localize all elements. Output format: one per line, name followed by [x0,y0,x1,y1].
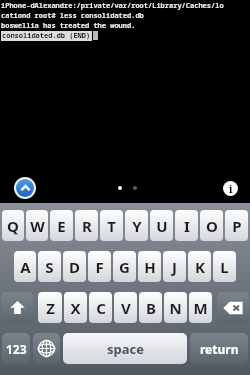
staticText: consolidated.db (END) [2,31,91,41]
staticText: B [146,298,156,318]
staticText: L [220,257,229,277]
button[interactable]: M [189,292,212,323]
staticText: P [232,216,242,236]
button[interactable]: P [225,210,248,241]
staticText: K [195,257,205,277]
button[interactable]: V [114,292,137,323]
staticText: space [107,340,144,358]
button[interactable]: Z [38,292,62,323]
button[interactable]: E [50,210,73,241]
staticText: cationd root# less consolidated.db [1,11,144,21]
staticText: F [95,257,104,277]
button[interactable]: N [164,292,187,323]
button[interactable]: Y [125,210,148,241]
staticText: T [107,216,116,236]
staticText: U [156,216,168,236]
button[interactable]: D [63,251,86,282]
button[interactable]: X [64,292,87,323]
button[interactable]: Shift [1,292,33,323]
staticText: Z [46,298,55,318]
button[interactable]: U [150,210,173,241]
button[interactable]: C [89,292,112,323]
staticText: A [20,257,31,277]
staticText: V [121,298,131,318]
staticText: E [57,216,66,236]
button[interactable]: F [88,251,111,282]
button[interactable]: Info [220,178,240,198]
button[interactable]: A [14,251,36,282]
button[interactable]: L [213,251,236,282]
staticText: X [70,298,81,318]
staticText: i [229,182,233,196]
button[interactable]: Delete [217,292,249,323]
staticText: H [144,257,156,277]
button[interactable]: K [188,251,211,282]
staticText: J [172,257,177,277]
staticText: R [82,216,92,236]
staticText: Q [7,216,19,236]
staticText: I [184,216,190,236]
staticText: S [45,257,54,277]
staticText: return [200,341,239,357]
button[interactable]: Change keyboard [33,333,60,364]
button[interactable]: return [190,333,248,364]
staticText: W [30,216,45,236]
staticText: N [169,298,182,318]
button[interactable]: Show menu [14,177,36,199]
staticText: D [69,257,80,277]
button[interactable]: J [163,251,186,282]
button[interactable]: Numbers [2,333,30,364]
staticText: boswellia has treated the wound. [1,21,136,31]
button[interactable]: G [113,251,136,282]
staticText: G [119,257,130,277]
button[interactable]: W [26,210,48,241]
button[interactable]: O [200,210,223,241]
staticText: 123 [6,341,27,357]
button[interactable]: T [100,210,123,241]
staticText: M [193,298,208,318]
button[interactable]: B [139,292,162,323]
staticText: iPhone-dAlexandre:/private/var/root/Libr… [1,1,224,11]
staticText: O [206,216,218,236]
staticText: C [96,298,106,318]
button[interactable]: S [38,251,61,282]
button[interactable]: H [138,251,161,282]
button[interactable]: Q [2,210,24,241]
staticText: Y [132,216,142,236]
button[interactable]: R [75,210,98,241]
button[interactable]: I [175,210,198,241]
button[interactable]: space [63,333,187,364]
